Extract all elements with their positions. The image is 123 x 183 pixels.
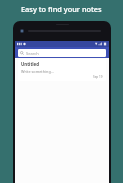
button[interactable]: Search (18, 49, 106, 57)
other: Search (20, 51, 24, 55)
staticText: Search (26, 51, 39, 56)
button[interactable]: Untitled (18, 59, 106, 81)
staticText: Easy to find your notes (21, 4, 102, 14)
staticText: Untitled (21, 61, 40, 67)
staticText: Sep 19 (93, 75, 103, 79)
staticText: Write something... (21, 69, 54, 74)
